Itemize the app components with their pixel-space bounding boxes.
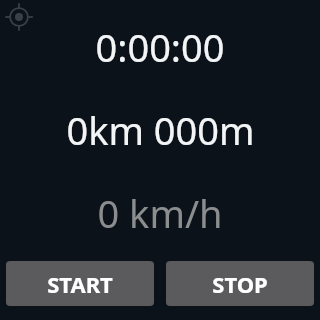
staticText: STOP	[212, 269, 268, 299]
staticText: 0km 000m	[66, 104, 255, 156]
staticText: 0:00:00	[95, 21, 225, 73]
button[interactable]: STOP	[166, 261, 314, 306]
staticText: 0 km/h	[97, 187, 223, 239]
button[interactable]: START	[6, 261, 154, 306]
button[interactable]: GPS status	[7, 5, 31, 29]
staticText: START	[47, 269, 113, 299]
